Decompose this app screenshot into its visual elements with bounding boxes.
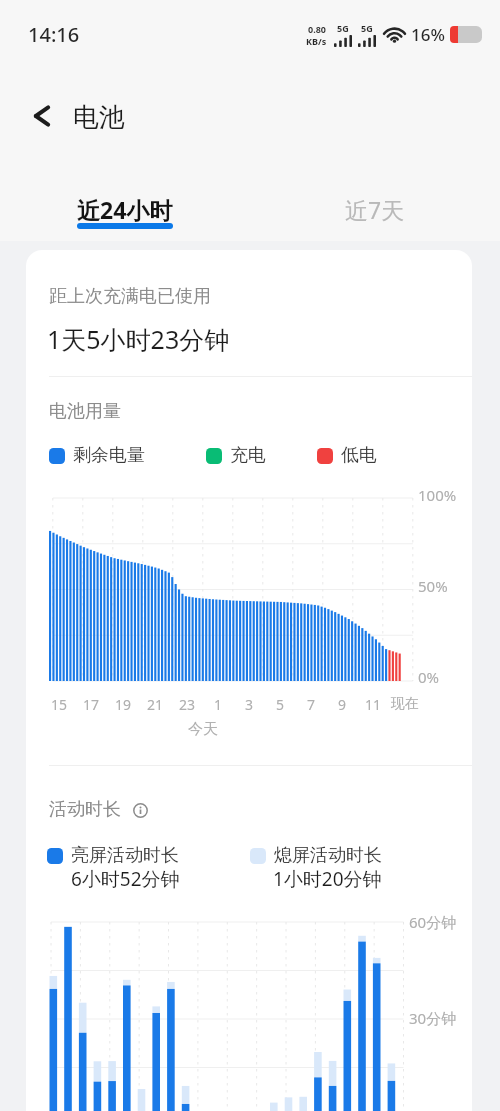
staticText: 17: [83, 695, 100, 714]
staticText: 电池: [73, 101, 125, 134]
button[interactable]: 近7天: [250, 172, 500, 241]
staticText: 现在: [391, 695, 419, 713]
staticText: 今天: [188, 720, 218, 739]
staticText: 5G: [361, 22, 373, 34]
staticText: 19: [115, 695, 132, 714]
staticText: 熄屏活动时长: [274, 844, 382, 867]
button[interactable]: More information: [131, 801, 149, 819]
staticText: 9: [338, 695, 347, 714]
staticText: 6小时52分钟: [71, 866, 180, 892]
staticText: 近7天: [345, 194, 405, 225]
staticText: KB/s: [306, 35, 327, 47]
staticText: 0.80: [308, 23, 326, 35]
staticText: 充电: [230, 444, 266, 467]
staticText: 距上次充满电已使用: [49, 285, 211, 308]
staticText: 5: [276, 695, 285, 714]
staticText: 活动时长: [49, 798, 121, 821]
staticText: 14:16: [28, 21, 80, 48]
button[interactable]: Back: [19, 93, 64, 138]
staticText: 7: [307, 695, 316, 714]
staticText: 100%: [418, 485, 457, 505]
staticText: 60分钟: [409, 912, 457, 932]
staticText: 剩余电量: [73, 444, 145, 467]
button[interactable]: 充电: [203, 444, 266, 467]
button[interactable]: 低电: [314, 444, 377, 467]
staticText: 0%: [418, 667, 440, 687]
staticText: 近24小时: [77, 194, 173, 225]
staticText: 50%: [418, 576, 448, 596]
button[interactable]: 剩余电量: [46, 444, 145, 467]
staticText: 5G: [337, 22, 349, 34]
staticText: 21: [147, 695, 164, 714]
staticText: 3: [245, 695, 254, 714]
staticText: 1小时20分钟: [273, 866, 382, 892]
button[interactable]: 熄屏活动时长: [247, 844, 382, 867]
staticText: 电池用量: [49, 400, 121, 423]
staticText: 亮屏活动时长: [71, 844, 179, 867]
staticText: 低电: [341, 444, 377, 467]
staticText: 15: [51, 695, 68, 714]
staticText: 11: [365, 695, 382, 714]
staticText: 30分钟: [409, 1008, 457, 1028]
staticText: 16%: [411, 23, 445, 46]
button[interactable]: 近24小时: [0, 172, 250, 241]
staticText: 23: [179, 695, 196, 714]
staticText: 1天5小时23分钟: [47, 322, 230, 356]
button[interactable]: 亮屏活动时长: [44, 844, 179, 867]
staticText: 1: [214, 695, 223, 714]
